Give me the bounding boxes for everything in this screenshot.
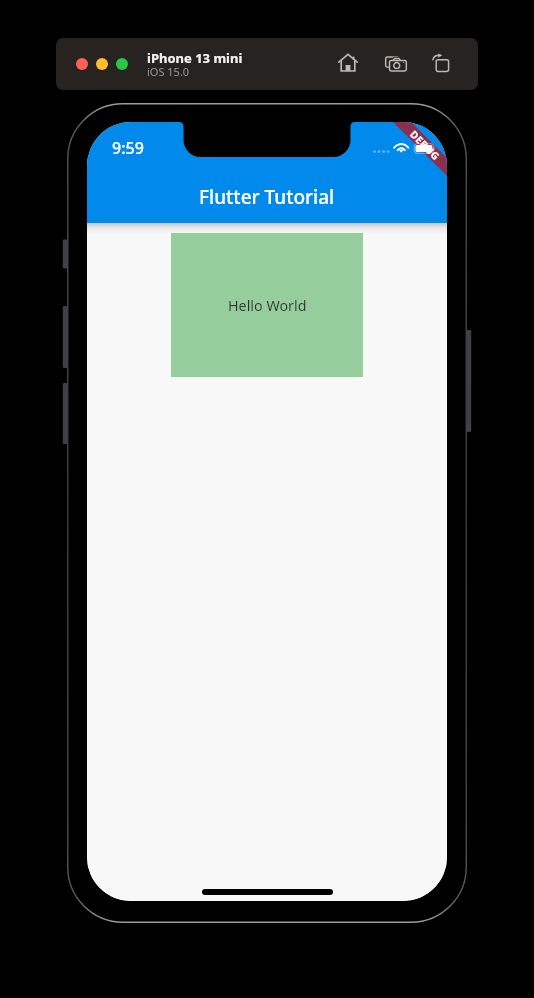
button[interactable]: Minimise: [96, 58, 108, 70]
button[interactable]: Home: [338, 53, 358, 73]
button[interactable]: Hello World: [171, 233, 363, 377]
staticText: Hello World: [228, 296, 307, 315]
button[interactable]: Share: [431, 53, 451, 73]
button[interactable]: Close: [76, 58, 88, 70]
staticText: 9:59: [112, 137, 144, 159]
staticText: DEBUG: [408, 127, 443, 163]
staticText: iPhone 13 mini: [147, 49, 243, 67]
button[interactable]: Screenshot: [384, 52, 408, 76]
staticText: iOS 15.0: [147, 64, 190, 79]
staticText: Flutter Tutorial: [199, 184, 335, 210]
button[interactable]: Zoom: [116, 58, 128, 70]
